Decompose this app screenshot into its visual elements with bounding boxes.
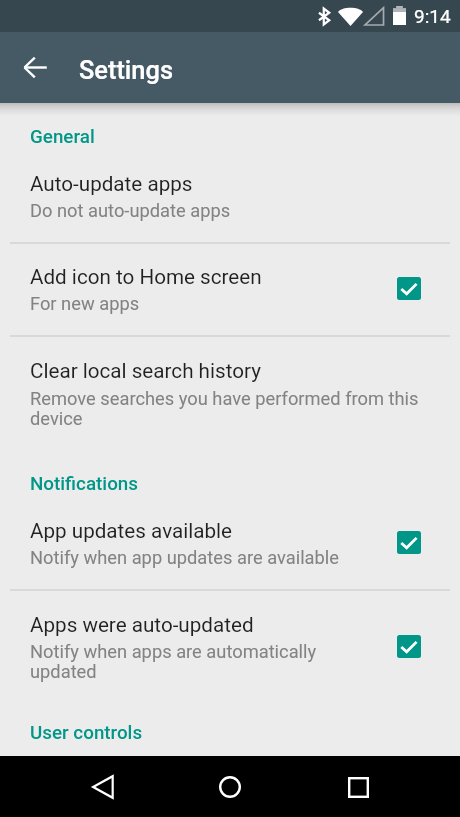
button[interactable]: Navigate up — [14, 46, 57, 89]
button[interactable] — [0, 336, 460, 448]
button[interactable] — [0, 148, 460, 242]
staticText: Do not auto-update apps — [30, 200, 430, 221]
staticText: Add icon to Home screen — [30, 265, 262, 289]
button[interactable]: Back — [80, 764, 126, 810]
button[interactable] — [0, 496, 460, 589]
button[interactable]: Checked checkbox — [397, 635, 421, 658]
staticText: Notify when apps are automatically updat… — [30, 641, 320, 682]
staticText: Clear local search history — [30, 359, 261, 383]
staticText: Settings — [79, 55, 173, 85]
staticText: Auto-update apps — [30, 172, 193, 196]
button[interactable]: General — [30, 126, 95, 148]
staticText: For new apps — [30, 293, 370, 314]
staticText: Notify when app updates are available — [30, 547, 370, 568]
staticText: Apps were auto-updated — [30, 613, 254, 637]
button[interactable]: Home — [207, 764, 253, 810]
button[interactable]: Checked checkbox — [397, 531, 421, 554]
button[interactable] — [0, 242, 460, 336]
button[interactable] — [0, 589, 460, 699]
button[interactable]: Recent apps — [335, 764, 381, 810]
staticText: Remove searches you have performed from … — [30, 388, 422, 429]
button[interactable]: Checked checkbox — [397, 277, 421, 300]
button[interactable]: User controls — [30, 722, 143, 744]
staticText: App updates available — [30, 519, 233, 543]
button[interactable]: Notifications — [30, 473, 139, 495]
staticText: 9:14 — [414, 5, 451, 27]
